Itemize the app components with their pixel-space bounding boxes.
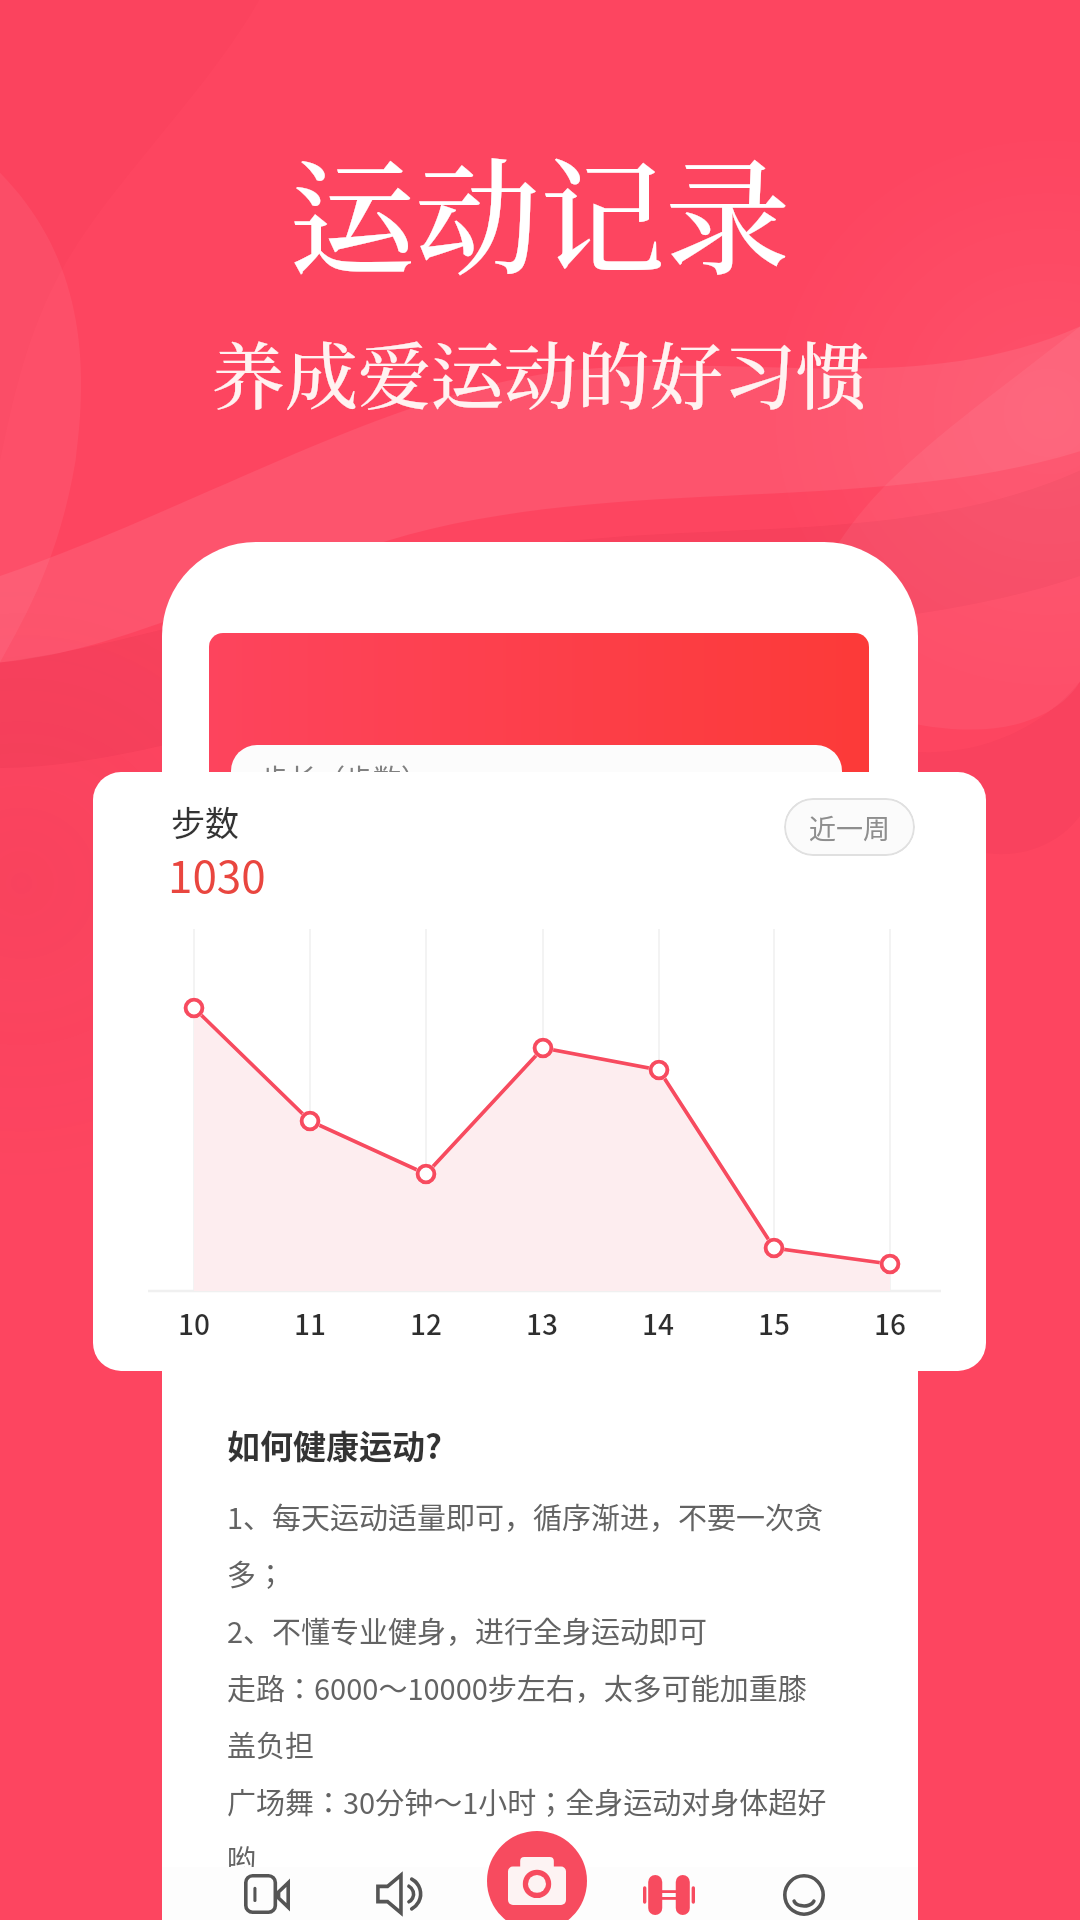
button[interactable]: 步数 1030 <box>93 772 986 1371</box>
button[interactable]: Workout <box>621 1857 717 1920</box>
staticText: 11 <box>294 1303 326 1344</box>
staticText: 步长（步数） <box>261 758 430 799</box>
staticText: 近一周 <box>809 808 890 847</box>
staticText: 13 <box>526 1303 558 1344</box>
staticText: 16 <box>874 1303 906 1344</box>
staticText: 14 <box>642 1303 674 1344</box>
staticText: 15 <box>758 1303 790 1344</box>
button[interactable]: Video <box>219 1856 315 1920</box>
staticText: 多； <box>227 1552 286 1594</box>
button[interactable]: Camera <box>487 1831 587 1920</box>
staticText: 走路：6000～10000步左右，太多可能加重膝 <box>227 1666 807 1708</box>
staticText: 1030 <box>168 842 266 906</box>
staticText: 12 <box>410 1303 442 1344</box>
staticText: 广场舞：30分钟～1小时；全身运动对身体超好 <box>227 1780 827 1822</box>
button[interactable]: Sound <box>352 1856 448 1920</box>
staticText: 哟 <box>227 1837 257 1879</box>
staticText: 养成爱运动的好习惯 <box>212 319 869 424</box>
staticText: 1、每天运动适量即可，循序渐进，不要一次贪 <box>227 1495 824 1537</box>
button[interactable]: Profile <box>756 1857 852 1920</box>
staticText: 盖负担 <box>227 1723 315 1765</box>
staticText: 步数 <box>171 797 239 846</box>
staticText: 如何健康运动? <box>227 1421 442 1469</box>
button[interactable]: 近一周 <box>784 798 915 856</box>
staticText: 10 <box>178 1303 210 1344</box>
staticText: 运动记录 <box>290 120 790 300</box>
staticText: 2、不懂专业健身，进行全身运动即可 <box>227 1609 708 1651</box>
